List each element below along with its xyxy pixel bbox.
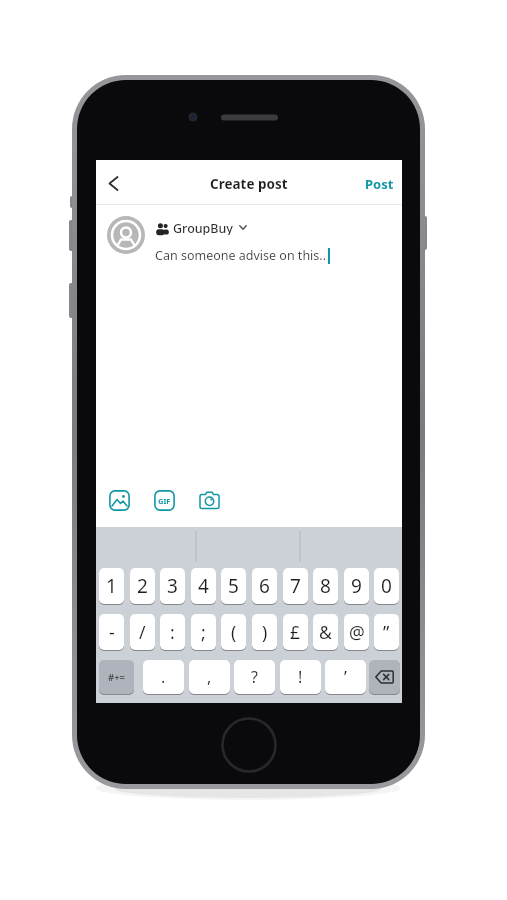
button[interactable] [109, 490, 130, 511]
button[interactable]: ! [280, 660, 321, 694]
staticText: ) [262, 620, 268, 644]
staticText: #+= [108, 671, 126, 684]
button[interactable]: & [313, 614, 338, 650]
button[interactable]: Post [365, 168, 394, 186]
button[interactable]: GroupBuy [156, 220, 247, 235]
button[interactable]: ’ [325, 660, 366, 694]
button[interactable]: . [143, 660, 184, 694]
button[interactable]: ( [221, 614, 246, 650]
staticText: 8 [320, 573, 331, 599]
staticText: 5 [228, 573, 239, 599]
staticText: 9 [351, 573, 362, 599]
staticText: & [319, 620, 332, 644]
button[interactable]: ; [191, 614, 216, 650]
button[interactable]: @ [344, 614, 369, 650]
staticText: 3 [167, 573, 178, 599]
staticText: ’ [344, 666, 347, 688]
staticText: 2 [137, 573, 148, 599]
staticText: Post [365, 175, 394, 193]
button[interactable] [199, 490, 220, 511]
button[interactable]: 5 [221, 568, 246, 604]
staticText: £ [290, 620, 301, 644]
staticText: 6 [259, 573, 270, 599]
staticText: ( [231, 620, 237, 644]
staticText: - [109, 620, 115, 644]
staticText: ; [201, 620, 206, 644]
button[interactable] [98, 168, 128, 198]
button[interactable]: GIF [154, 490, 175, 511]
staticText: Create post [210, 175, 288, 193]
button[interactable]: - [99, 614, 124, 650]
staticText: 0 [381, 573, 392, 599]
staticText: GroupBuy [173, 220, 233, 235]
staticText: . [161, 666, 166, 688]
button[interactable]: : [160, 614, 185, 650]
staticText: ” [383, 620, 390, 644]
staticText: 7 [290, 573, 301, 599]
button[interactable]: / [130, 614, 155, 650]
staticText: , [207, 666, 212, 688]
button[interactable]: ) [252, 614, 277, 650]
button[interactable]: #+= [99, 660, 134, 694]
button[interactable]: ” [374, 614, 399, 650]
button[interactable]: 8 [313, 568, 338, 604]
staticText: 4 [198, 573, 209, 599]
button[interactable]: 3 [160, 568, 185, 604]
button[interactable]: 0 [374, 568, 399, 604]
staticText: ? [251, 666, 258, 688]
button[interactable]: ? [234, 660, 275, 694]
staticText: GIF [158, 496, 171, 506]
staticText: ! [298, 666, 303, 688]
button[interactable]: 7 [283, 568, 308, 604]
staticText: 1 [106, 573, 117, 599]
staticText: : [170, 620, 175, 644]
button[interactable]: 2 [130, 568, 155, 604]
button[interactable]: 4 [191, 568, 216, 604]
staticText: / [139, 620, 146, 644]
button[interactable]: 9 [344, 568, 369, 604]
staticText: Can someone advise on this.. [155, 247, 327, 264]
button[interactable]: 6 [252, 568, 277, 604]
button[interactable]: 1 [99, 568, 124, 604]
button[interactable]: £ [283, 614, 308, 650]
button[interactable] [369, 660, 400, 694]
button[interactable]: , [189, 660, 230, 694]
staticText: @ [349, 620, 365, 644]
